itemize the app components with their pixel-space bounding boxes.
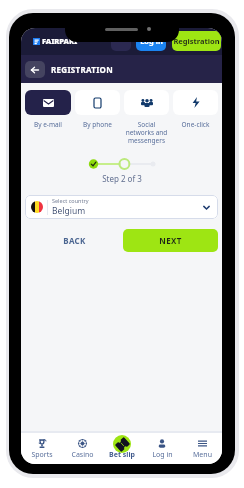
staticText: Menu <box>193 450 212 460</box>
staticText: Casino <box>71 450 94 460</box>
button[interactable]: One-click <box>173 90 218 129</box>
button[interactable]: By phone <box>75 90 120 129</box>
staticText: Belgium <box>52 205 86 217</box>
button[interactable]: Log in <box>142 433 182 464</box>
button[interactable]: BACK <box>25 229 123 252</box>
staticText: REGISTRATION <box>51 64 114 75</box>
staticText: Select country <box>52 197 89 204</box>
button[interactable]: Social networks and messengers <box>124 90 169 145</box>
button[interactable]: Sports <box>21 433 62 464</box>
button[interactable]: Bet slip <box>102 433 142 464</box>
staticText: Sports <box>31 450 53 460</box>
button[interactable]: By e-mail <box>25 90 71 129</box>
staticText: Log in <box>140 36 163 46</box>
staticText: FAIRPARI <box>42 36 78 46</box>
staticText: Registration <box>173 36 220 46</box>
button[interactable]: NEXT <box>123 229 218 252</box>
staticText: Bet slip <box>109 450 135 460</box>
button[interactable]: FAIRPARI <box>33 36 78 46</box>
button[interactable]: Log in <box>136 31 166 51</box>
staticText: By e-mail <box>25 120 71 129</box>
button[interactable]: Back <box>25 61 45 78</box>
button[interactable]: Menu <box>182 433 222 464</box>
staticText: Log in <box>152 450 173 460</box>
staticText: Social networks and messengers <box>124 120 169 145</box>
staticText: By phone <box>75 120 120 129</box>
button[interactable]: Registration <box>172 31 221 51</box>
staticText: Step 2 of 3 <box>102 173 142 184</box>
button[interactable]: Language <box>111 31 131 51</box>
button[interactable]: Select country <box>25 195 218 219</box>
staticText: BACK <box>63 235 86 246</box>
staticText: One-click <box>173 120 218 129</box>
staticText: NEXT <box>159 235 182 246</box>
button[interactable]: Casino <box>62 433 102 464</box>
